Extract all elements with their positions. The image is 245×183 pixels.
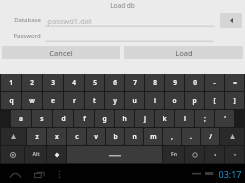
staticText: / [209,132,212,141]
button[interactable]: 7 [125,74,144,91]
staticText: 7 [133,78,137,87]
staticText: v [94,132,98,141]
staticText: h [122,114,127,123]
button[interactable]: l [175,110,194,127]
button[interactable]: Space [67,146,162,163]
staticText: e [51,96,55,105]
button[interactable]: Alt [25,146,46,163]
button[interactable]: h [115,110,134,127]
button[interactable]: Recent apps [30,165,48,183]
button[interactable]: Back [6,165,24,183]
button[interactable]: , [163,128,181,145]
button[interactable]: d [53,110,73,127]
staticText: t [93,96,96,105]
button[interactable]: ] [225,92,244,109]
button[interactable]: Shift [1,128,26,145]
staticText: Fn [171,151,177,158]
button[interactable]: z [27,128,46,145]
button[interactable]: 4 [64,74,84,91]
button[interactable]: / [201,128,219,145]
staticText: k [162,114,167,123]
button[interactable]: 6 [105,74,124,91]
button[interactable]: q [1,92,21,109]
button[interactable]: 1 [1,74,21,91]
staticText: 1 [9,78,13,87]
staticText: c [75,132,79,141]
staticText: passwd1.dat [47,16,92,26]
staticText: Load [175,48,193,58]
button[interactable]: ' [215,110,234,127]
button[interactable]: s [32,110,52,127]
staticText: 2 [30,78,34,87]
button[interactable]: [ [205,92,224,109]
button[interactable]: e [43,92,63,109]
button[interactable]: Fn [163,146,184,163]
button[interactable]: i [145,92,164,109]
staticText: m [150,132,157,141]
staticText: 8 [153,78,157,87]
button[interactable]: w [22,92,42,109]
staticText: s [40,114,44,123]
button[interactable]: Load [124,46,243,59]
button[interactable]: 8 [145,74,164,91]
button[interactable]: Cancel [2,46,120,59]
button[interactable]: b [106,128,124,145]
button[interactable]: ; [195,110,214,127]
staticText: ; [204,114,206,123]
button[interactable]: x [47,128,66,145]
button[interactable] [45,31,213,42]
staticText: Database [14,16,41,24]
button[interactable]: o [165,92,184,109]
staticText: n [132,132,137,141]
staticText: [ [213,96,216,105]
button[interactable]: Change input method [47,146,66,163]
button[interactable]: - [205,74,224,91]
staticText: y [113,96,117,105]
button[interactable]: Keyboard settings [1,146,24,163]
button[interactable]: Hide keyboard [225,146,244,163]
button[interactable]: j [135,110,154,127]
staticText: 5 [93,78,97,87]
staticText: d [61,114,66,123]
staticText: . [190,132,192,141]
button[interactable]: m [144,128,162,145]
staticText: 6 [113,78,117,87]
button[interactable]: passwd1.dat [45,14,215,27]
staticText: , [171,132,173,141]
button[interactable]: = [225,74,244,91]
staticText: o [172,96,177,105]
button[interactable]: 2 [22,74,42,91]
button[interactable]: v [87,128,105,145]
button[interactable]: y [105,92,124,109]
staticText: p [192,96,197,105]
staticText: = [233,78,237,87]
button[interactable]: u [125,92,144,109]
staticText: Alt [32,151,40,158]
button[interactable]: 3 [43,74,63,91]
button[interactable]: f [74,110,94,127]
button[interactable]: . [182,128,200,145]
button[interactable]: c [67,128,86,145]
button[interactable]: g [95,110,114,127]
button[interactable]: Browse files [220,13,242,28]
staticText: f [83,114,86,123]
staticText: u [132,96,137,105]
button[interactable]: a [11,110,31,127]
staticText: Cancel [49,48,73,58]
button[interactable]: More options [52,167,66,181]
button[interactable]: 5 [85,74,104,91]
button[interactable]: 0 [185,74,204,91]
button[interactable]: 9 [165,74,184,91]
button[interactable]: Previous [205,146,224,163]
button[interactable]: n [125,128,143,145]
button[interactable]: Shift right [220,128,244,145]
staticText: 3 [51,78,55,87]
button[interactable]: Settings [185,146,204,163]
button[interactable]: p [185,92,204,109]
staticText: 9 [173,78,177,87]
button[interactable]: k [155,110,174,127]
button[interactable]: r [64,92,84,109]
button[interactable]: t [85,92,104,109]
staticText: - [213,78,216,87]
staticText: z [35,132,39,141]
